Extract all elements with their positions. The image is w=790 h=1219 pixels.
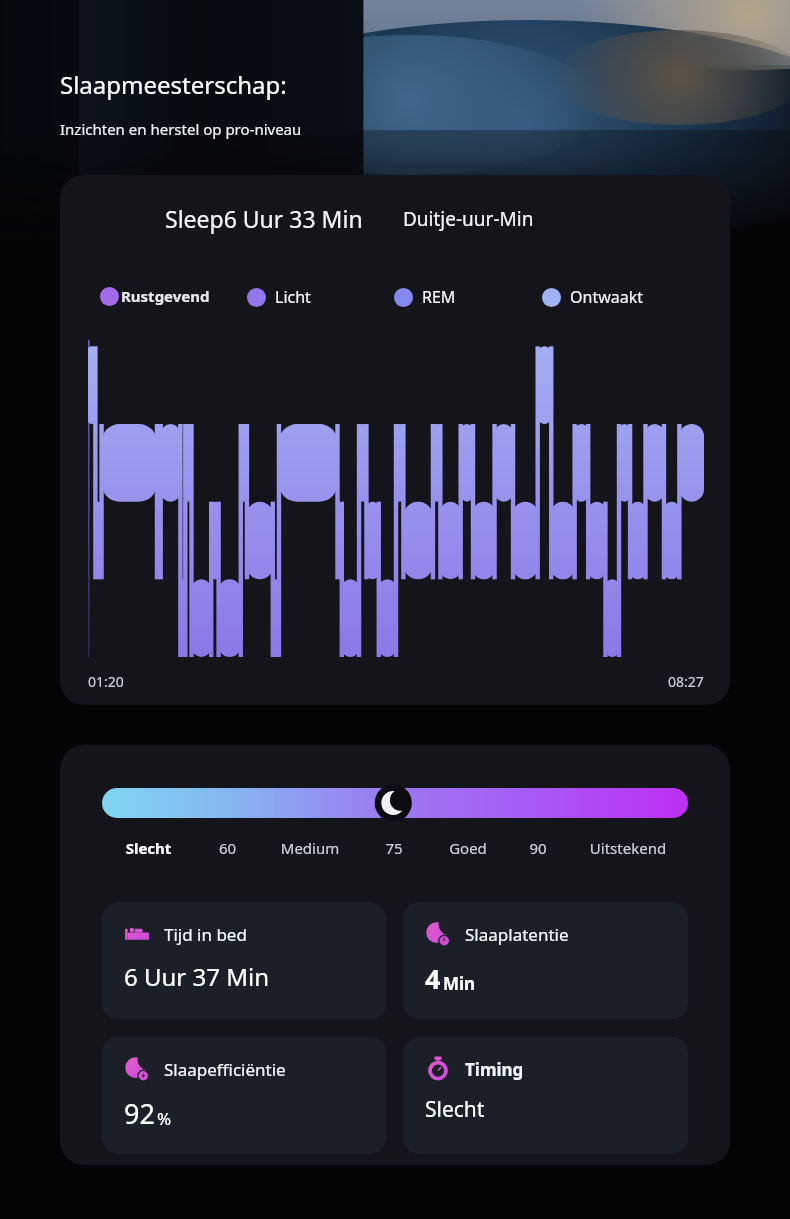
button[interactable]: Timing <box>403 1037 688 1154</box>
button[interactable]: Sleep6 Uur 33 Min <box>60 175 730 705</box>
button[interactable]: Licht <box>247 286 394 308</box>
staticText: Slaapmeesterschap: <box>60 68 287 101</box>
staticText: 01:20 <box>88 672 124 691</box>
staticText: Inzichten en herstel op pro-niveau <box>60 119 302 139</box>
staticText: Uitstekend <box>568 838 688 858</box>
button[interactable]: REM <box>394 286 542 308</box>
staticText: 75 <box>360 838 428 858</box>
staticText: Rustgevend <box>121 286 210 306</box>
staticText: 08:27 <box>668 672 704 691</box>
button[interactable]: Ontwaakt <box>542 286 690 308</box>
staticText: REM <box>422 286 456 308</box>
staticText: 4 <box>425 960 441 997</box>
other: Tijd in bed <box>124 921 150 947</box>
staticText: 90 <box>508 838 568 858</box>
other: Slaapefficiëntie <box>124 1056 150 1082</box>
other: Timing <box>425 1056 451 1082</box>
button[interactable] <box>102 788 688 818</box>
staticText: Slecht <box>425 1095 485 1124</box>
staticText: Slaaplatentie <box>465 923 569 946</box>
staticText: Sleep6 Uur 33 Min <box>165 203 363 234</box>
staticText: 92 <box>124 1095 155 1132</box>
staticText: Goed <box>428 838 508 858</box>
staticText: 6 Uur 37 Min <box>124 960 269 993</box>
button[interactable]: Slaapefficiëntie <box>102 1037 386 1154</box>
button[interactable]: Rustgevend <box>100 286 247 306</box>
button[interactable]: Tijd in bed <box>102 902 386 1019</box>
staticText: Medium <box>260 838 360 858</box>
staticText: Min <box>443 972 476 995</box>
staticText: 60 <box>195 838 260 858</box>
staticText: Slaapefficiëntie <box>164 1058 286 1081</box>
staticText: Tijd in bed <box>164 923 247 946</box>
other: Slaaplatentie <box>425 921 451 947</box>
staticText: Licht <box>275 286 311 308</box>
staticText: Slecht <box>102 838 195 858</box>
staticText: % <box>157 1107 172 1130</box>
staticText: Duitje-uur-Min <box>403 206 534 232</box>
button[interactable]: Slaaplatentie <box>403 902 688 1019</box>
staticText: Ontwaakt <box>570 286 644 308</box>
staticText: Timing <box>465 1058 524 1081</box>
